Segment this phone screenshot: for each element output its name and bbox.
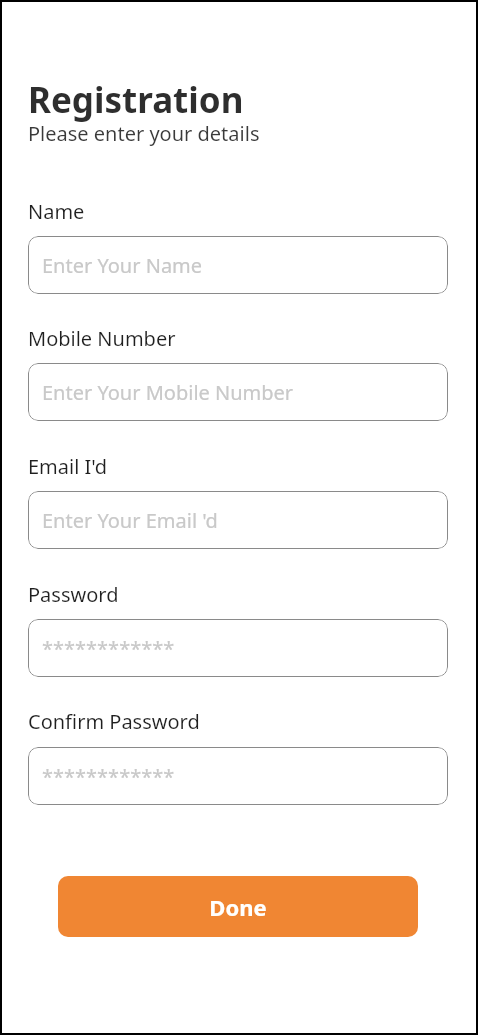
staticText: Mobile Number [28, 325, 176, 352]
button[interactable]: Enter Your Mobile Number [28, 363, 448, 421]
staticText: Email I'd [28, 453, 107, 480]
staticText: Done [209, 892, 267, 922]
staticText: Confirm Password [28, 708, 200, 735]
button[interactable]: ************ [28, 747, 448, 805]
staticText: ************ [42, 763, 175, 790]
button[interactable]: ************ [28, 619, 448, 677]
button[interactable]: Enter Your Email 'd [28, 491, 448, 549]
staticText: Enter Your Email 'd [42, 507, 218, 534]
staticText: Name [28, 198, 85, 225]
button[interactable]: Done [58, 876, 418, 937]
staticText: Enter Your Mobile Number [42, 379, 294, 406]
staticText: ************ [42, 635, 175, 662]
staticText: Registration [28, 76, 244, 124]
button[interactable]: Enter Your Name [28, 236, 448, 294]
staticText: Password [28, 581, 119, 608]
staticText: Enter Your Name [42, 252, 203, 279]
staticText: Please enter your details [28, 120, 260, 147]
